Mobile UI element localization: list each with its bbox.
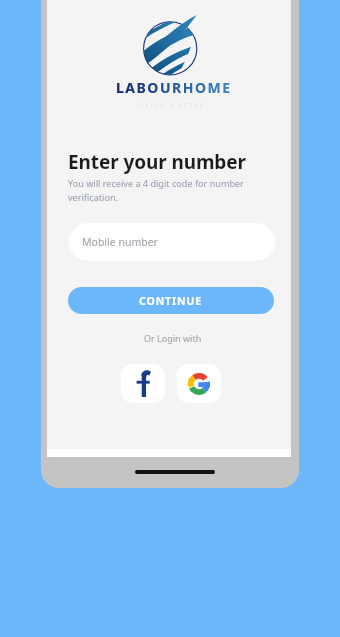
staticText: You will receive a 4 digit code for numb… — [68, 177, 258, 203]
staticText: Enter your number — [68, 149, 246, 175]
staticText: LABOURHOME — [116, 78, 232, 97]
button[interactable]: Mobile number — [69, 223, 275, 261]
button[interactable]: Login with Google — [177, 364, 221, 403]
button[interactable]: Login with Facebook — [121, 364, 165, 403]
staticText: CONTINUE — [139, 294, 203, 308]
staticText: Mobile number — [82, 235, 158, 249]
staticText: Or Login with — [144, 332, 202, 344]
staticText: CLICK 2 SERVE — [140, 101, 205, 109]
button[interactable]: CONTINUE — [68, 287, 274, 314]
